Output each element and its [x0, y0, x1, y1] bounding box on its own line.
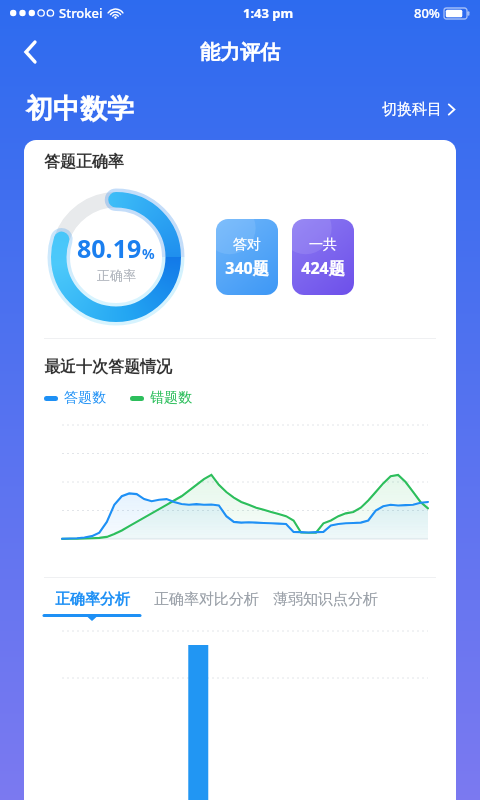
staticText: 1:43 pm — [243, 4, 294, 22]
staticText: 正确率 — [97, 267, 136, 283]
staticText: 答题数 — [64, 389, 106, 407]
button[interactable]: 正确率对比分析 — [154, 590, 259, 609]
button[interactable]: 薄弱知识点分析 — [273, 590, 378, 609]
button[interactable]: 一共 — [292, 219, 354, 295]
staticText: 80.19 — [77, 231, 142, 265]
staticText: 80% — [414, 4, 440, 22]
staticText: 340题 — [225, 257, 269, 279]
button[interactable]: 切换科目 — [378, 94, 460, 125]
staticText: 正确率分析 — [55, 590, 130, 609]
staticText: 能力评估 — [200, 40, 280, 65]
staticText: 错题数 — [150, 389, 192, 407]
button[interactable]: 正确率分析 — [44, 590, 140, 621]
staticText: Strokei — [59, 4, 103, 22]
staticText: 切换科目 — [382, 100, 442, 119]
staticText: 答题正确率 — [44, 152, 124, 172]
staticText: 424题 — [301, 257, 345, 279]
staticText: 答对 — [233, 236, 261, 254]
button[interactable]: Back — [8, 29, 54, 75]
button[interactable]: 答对 — [216, 219, 278, 295]
staticText: % — [142, 244, 155, 263]
staticText: 最近十次答题情况 — [44, 357, 172, 377]
staticText: 初中数学 — [26, 92, 134, 126]
staticText: 一共 — [309, 236, 337, 254]
